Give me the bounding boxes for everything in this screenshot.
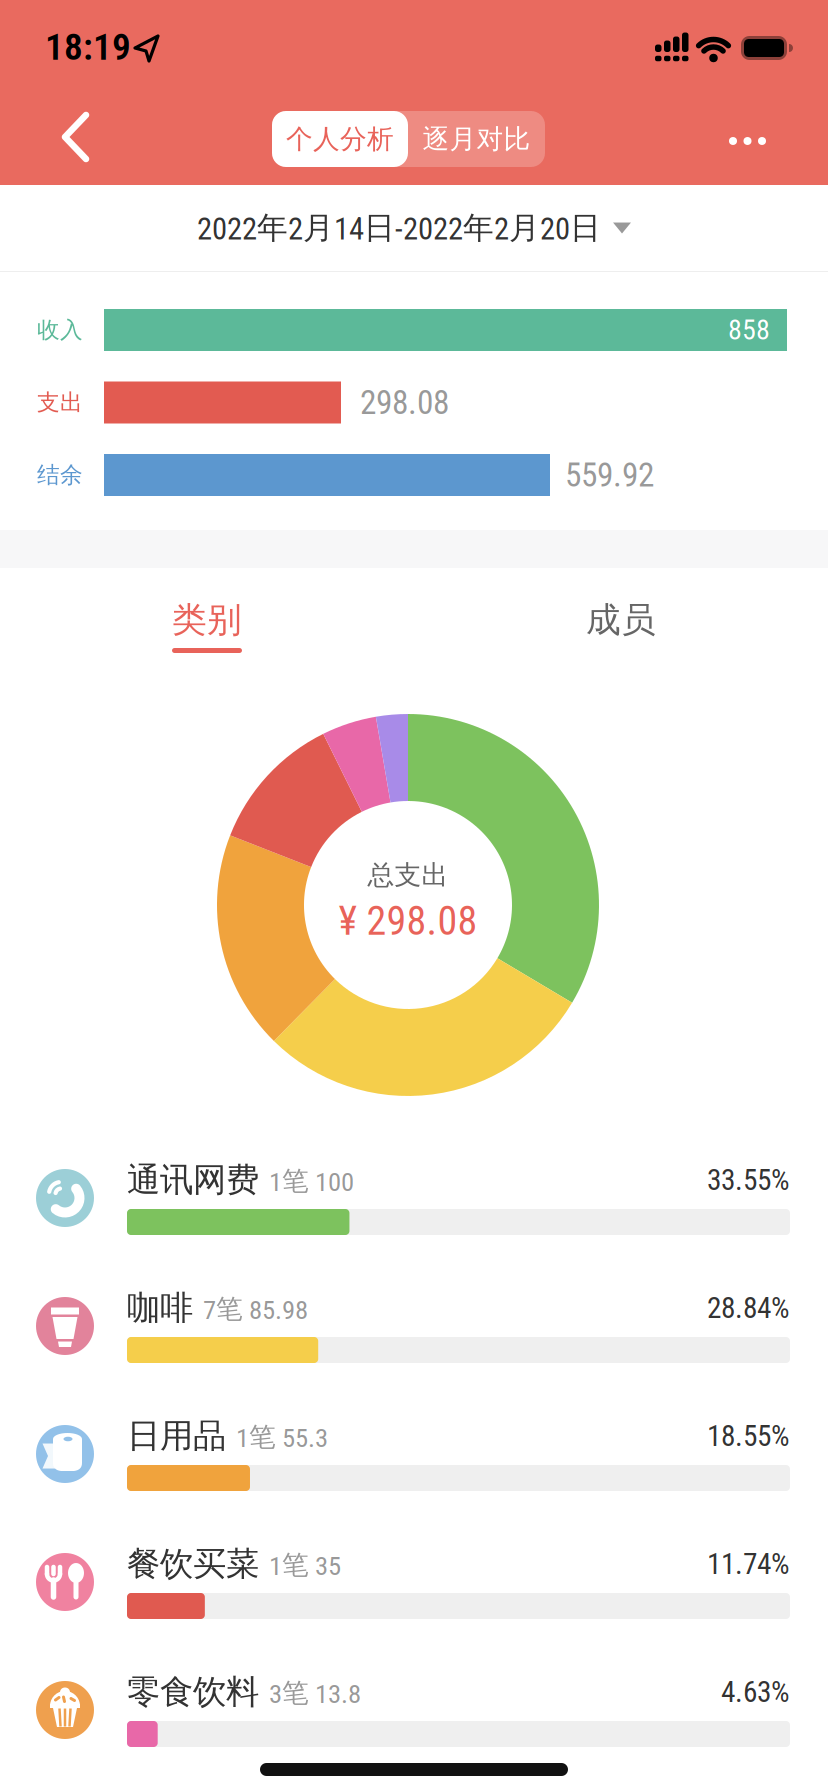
staticText: 逐月对比 — [422, 123, 530, 155]
staticText: 支出 — [37, 389, 83, 416]
staticText: 2022年2月14日-2022年2月20日 — [197, 209, 601, 247]
staticText: 结余 — [37, 461, 83, 489]
staticText: 1笔 55.3 — [236, 1420, 328, 1454]
staticText: 33.55% — [707, 1163, 790, 1197]
staticText: 收入 — [37, 316, 83, 344]
staticText: 成员 — [586, 599, 656, 641]
staticText: 18:19 — [45, 25, 131, 69]
staticText: 18.55% — [707, 1419, 790, 1453]
staticText: 通讯网费 — [127, 1159, 259, 1200]
staticText: ¥ 298.08 — [338, 898, 477, 944]
staticText: 858 — [728, 314, 770, 346]
staticText: 零食饮料 — [127, 1671, 259, 1712]
staticText: 559.92 — [565, 455, 654, 495]
staticText: 个人分析 — [286, 123, 394, 155]
staticText: 4.63% — [721, 1675, 790, 1709]
staticText: 类别 — [172, 599, 242, 641]
staticText: 餐饮买菜 — [127, 1543, 259, 1584]
staticText: 11.74% — [707, 1547, 790, 1581]
staticText: 咖啡 — [127, 1287, 193, 1328]
staticText: 日用品 — [127, 1415, 226, 1456]
staticText: 1笔 35 — [269, 1548, 341, 1582]
staticText: 7笔 85.98 — [203, 1292, 308, 1326]
staticText: 3笔 13.8 — [269, 1676, 361, 1710]
staticText: 28.84% — [707, 1291, 790, 1325]
staticText: 总支出 — [367, 859, 448, 891]
staticText: 298.08 — [360, 383, 449, 422]
staticText: 1笔 100 — [269, 1164, 354, 1198]
